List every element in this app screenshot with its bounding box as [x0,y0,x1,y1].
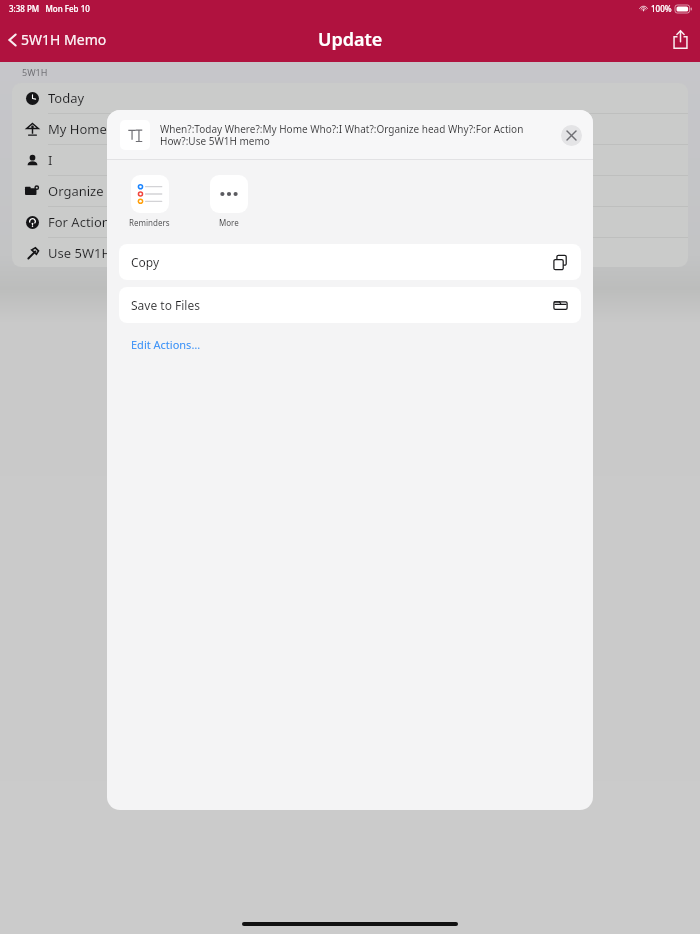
button[interactable]: Share [661,22,700,57]
button[interactable]: Edit Actions… [107,335,213,358]
button[interactable]: Save to Files [119,287,581,323]
staticText: Reminders [129,217,170,228]
staticText: 3:38 PM Mon Feb 10 [9,3,90,14]
staticText: Edit Actions… [131,337,201,352]
staticText: Update [318,27,383,52]
staticText: I [48,151,53,169]
staticText: When?:Today Where?:My Home Who?:I What?:… [160,122,553,148]
button[interactable]: Organize head [12,176,688,206]
button[interactable]: Today [12,83,688,113]
staticText: 100% [651,3,672,14]
staticText: Use 5W1H memo [48,244,154,262]
button[interactable]: More [206,173,252,230]
button[interactable]: I [12,145,688,175]
button[interactable]: Reminders [125,173,174,230]
staticText: For Action [48,213,110,231]
button[interactable]: My Home [12,114,688,144]
staticText: Save to Files [131,297,200,313]
button[interactable]: 5W1H Memo [0,24,117,55]
staticText: 5W1H [22,66,48,78]
staticText: Copy [131,254,160,270]
button[interactable]: Close [561,125,582,146]
staticText: 5W1H Memo [21,30,107,49]
staticText: Today [48,89,85,107]
button[interactable]: Copy [119,244,581,280]
button[interactable]: For Action [12,207,688,237]
staticText: Organize head [48,182,138,200]
staticText: More [219,217,239,228]
staticText: My Home [48,120,107,138]
button[interactable]: Use 5W1H memo [12,238,688,267]
